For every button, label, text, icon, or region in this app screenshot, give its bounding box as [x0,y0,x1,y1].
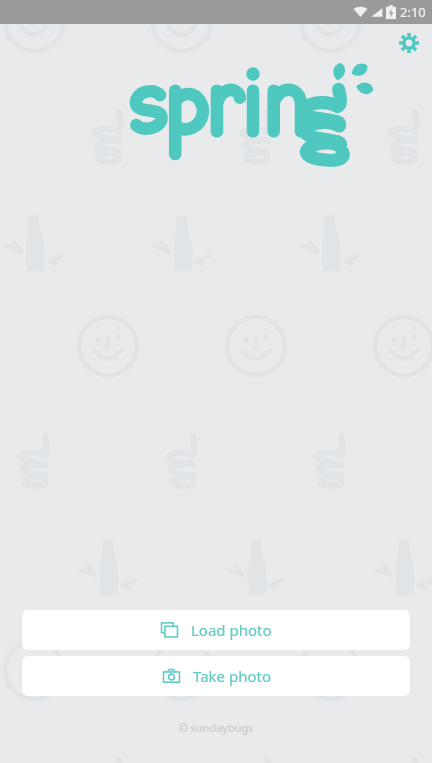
staticText: 2:10 [400,3,426,21]
staticText: © sundaybugs [0,720,432,735]
button[interactable]: Load photo [22,610,410,650]
button[interactable]: Settings [394,28,424,58]
staticText: Load photo [191,620,272,640]
button[interactable]: Take photo [22,656,410,696]
staticText: Take photo [193,666,271,686]
